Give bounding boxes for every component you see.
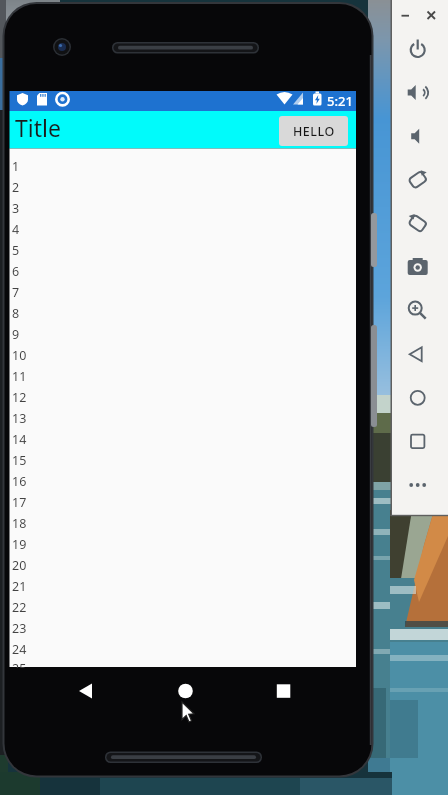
button[interactable]: 14: [10, 429, 357, 450]
button[interactable]: 5: [10, 240, 357, 261]
button[interactable]: [404, 253, 432, 281]
staticText: 12: [12, 389, 27, 406]
button[interactable]: 15: [10, 450, 357, 471]
button[interactable]: 12: [10, 387, 357, 408]
button[interactable]: 13: [10, 408, 357, 429]
button[interactable]: 2: [10, 177, 357, 198]
staticText: 19: [12, 536, 27, 553]
button[interactable]: 6: [10, 261, 357, 282]
button[interactable]: 1: [10, 156, 357, 177]
button[interactable]: [65, 671, 105, 711]
button[interactable]: [404, 384, 432, 412]
staticText: 18: [12, 515, 27, 532]
staticText: 15: [12, 452, 27, 469]
staticText: 22: [12, 599, 27, 616]
button[interactable]: 10: [10, 345, 357, 366]
button[interactable]: 3: [10, 198, 357, 219]
staticText: 13: [12, 410, 27, 427]
staticText: 20: [12, 557, 27, 574]
button[interactable]: 11: [10, 366, 357, 387]
button[interactable]: 7: [10, 282, 357, 303]
staticText: 25: [12, 660, 27, 668]
button[interactable]: [404, 35, 432, 63]
button[interactable]: [165, 671, 205, 711]
staticText: 17: [12, 494, 27, 511]
staticText: 14: [12, 431, 27, 448]
staticText: 24: [12, 641, 27, 658]
button[interactable]: 19: [10, 534, 357, 555]
button[interactable]: 16: [10, 471, 357, 492]
button[interactable]: [404, 471, 432, 499]
button[interactable]: 25: [10, 660, 357, 668]
staticText: 5:21: [327, 92, 353, 110]
button[interactable]: [404, 79, 432, 107]
button[interactable]: HELLO: [279, 116, 348, 146]
staticText: 7: [12, 284, 20, 301]
staticText: 23: [12, 620, 27, 637]
staticText: HELLO: [293, 123, 335, 140]
staticText: 1: [12, 158, 20, 175]
button[interactable]: 24: [10, 639, 357, 660]
button[interactable]: [404, 122, 432, 150]
staticText: 8: [12, 305, 20, 322]
staticText: 2: [12, 179, 20, 196]
button[interactable]: 20: [10, 555, 357, 576]
staticText: 16: [12, 473, 27, 490]
staticText: 21: [12, 578, 27, 595]
button[interactable]: 23: [10, 618, 357, 639]
button[interactable]: [404, 297, 432, 325]
staticText: 11: [12, 368, 27, 385]
button[interactable]: [404, 427, 432, 455]
button[interactable]: 17: [10, 492, 357, 513]
button[interactable]: [263, 671, 303, 711]
button[interactable]: 18: [10, 513, 357, 534]
staticText: 6: [12, 263, 20, 280]
button[interactable]: 21: [10, 576, 357, 597]
staticText: 10: [12, 347, 27, 364]
button[interactable]: [424, 8, 439, 23]
staticText: Title: [15, 112, 61, 143]
staticText: 9: [12, 326, 20, 343]
button[interactable]: 4: [10, 219, 357, 240]
staticText: 3: [12, 200, 20, 217]
button[interactable]: 8: [10, 303, 357, 324]
button[interactable]: [404, 340, 432, 368]
button[interactable]: 9: [10, 324, 357, 345]
button[interactable]: [404, 166, 432, 194]
staticText: 4: [12, 221, 20, 238]
button[interactable]: [404, 209, 432, 237]
button[interactable]: [398, 8, 413, 23]
button[interactable]: 22: [10, 597, 357, 618]
staticText: 5: [12, 242, 20, 259]
